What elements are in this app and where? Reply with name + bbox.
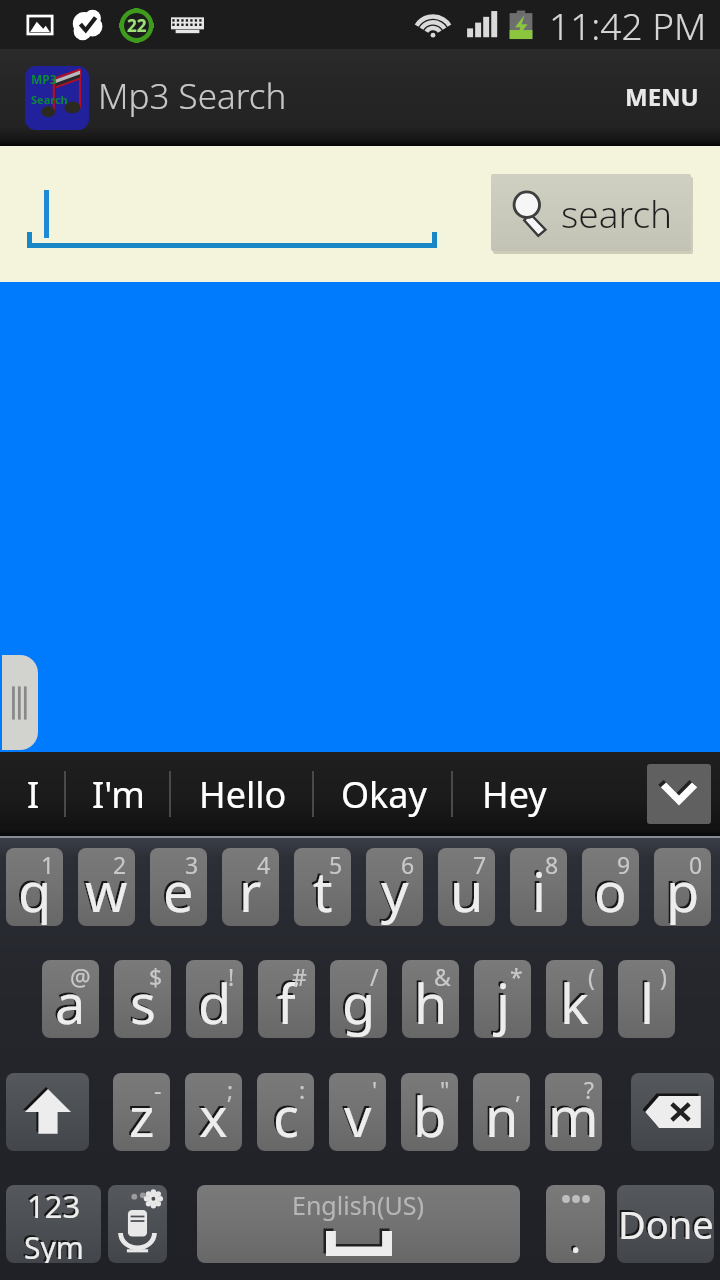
staticText: g <box>340 964 374 1038</box>
staticText: a <box>53 964 84 1038</box>
staticText: x <box>199 1079 228 1151</box>
staticText: f <box>275 964 294 1038</box>
staticText: # <box>292 961 307 992</box>
button[interactable]: k <box>546 960 603 1038</box>
button[interactable]: a <box>42 960 99 1038</box>
button[interactable]: c <box>257 1073 314 1151</box>
staticText: 8 <box>545 849 559 880</box>
button[interactable]: x <box>185 1073 242 1151</box>
staticText: 123 <box>25 1185 79 1225</box>
button[interactable]: Voice input <box>108 1185 167 1263</box>
button[interactable]: s <box>114 960 171 1038</box>
staticText: s <box>128 964 154 1038</box>
staticText: e <box>161 852 192 926</box>
button[interactable]: search <box>491 174 691 251</box>
staticText: Hey <box>482 770 547 819</box>
staticText: k <box>558 964 587 1038</box>
button[interactable]: e <box>150 848 207 926</box>
button[interactable]: MP3 <box>22 64 287 128</box>
staticText: , <box>515 1074 522 1105</box>
button[interactable]: j <box>474 960 531 1038</box>
button[interactable]: I <box>0 752 66 836</box>
staticText: Sym <box>24 1227 84 1263</box>
button[interactable]: w <box>78 848 135 926</box>
staticText: x <box>197 1077 226 1151</box>
button[interactable]: I'm <box>66 752 171 836</box>
button[interactable]: o <box>582 848 639 926</box>
button[interactable]: Drag handle <box>2 655 38 750</box>
staticText: v <box>342 1077 370 1151</box>
staticText: ; <box>227 1074 234 1105</box>
button[interactable]: Hello <box>171 752 314 836</box>
button[interactable]: . <box>546 1185 605 1263</box>
staticText: z <box>127 1077 153 1151</box>
button[interactable]: MENU <box>607 66 720 127</box>
button[interactable] <box>27 190 437 248</box>
button[interactable]: v <box>329 1073 386 1151</box>
staticText: c <box>271 1077 297 1151</box>
staticText: @ <box>70 961 91 992</box>
staticText: 22 <box>127 14 147 37</box>
button[interactable]: f <box>258 960 315 1038</box>
button[interactable]: Space <box>197 1185 520 1263</box>
button[interactable]: Shift <box>6 1073 89 1151</box>
staticText: 4 <box>257 849 271 880</box>
button[interactable]: l <box>618 960 675 1038</box>
staticText: . <box>568 1206 580 1263</box>
button[interactable]: 123 <box>6 1185 101 1263</box>
staticText: p <box>664 852 698 926</box>
button[interactable]: b <box>401 1073 458 1151</box>
button[interactable]: Hide keyboard <box>647 764 711 824</box>
staticText: " <box>440 1074 450 1105</box>
staticText: s <box>130 966 156 1038</box>
staticText: q <box>18 854 52 926</box>
staticText: 9 <box>617 849 631 880</box>
staticText: m <box>548 1079 599 1151</box>
staticText: k <box>560 966 589 1038</box>
staticText: 5 <box>329 849 343 880</box>
staticText: r <box>237 852 260 926</box>
staticText: v <box>344 1079 372 1151</box>
staticText: 123 <box>27 1185 81 1227</box>
staticText: English(US) <box>292 1188 425 1222</box>
staticText: d <box>196 964 230 1038</box>
staticText: d <box>198 966 232 1038</box>
staticText: 7 <box>473 849 487 880</box>
button[interactable]: p <box>654 848 711 926</box>
button[interactable]: q <box>6 848 63 926</box>
button[interactable]: n <box>473 1073 530 1151</box>
staticText: 2 <box>113 849 127 880</box>
staticText: 3 <box>185 849 199 880</box>
button[interactable]: Done <box>617 1185 714 1263</box>
staticText: Sym <box>22 1225 82 1261</box>
staticText: * <box>510 961 523 992</box>
button[interactable]: g <box>330 960 387 1038</box>
button[interactable]: i <box>510 848 567 926</box>
staticText: l <box>640 966 654 1038</box>
staticText: o <box>594 854 627 926</box>
button[interactable]: m <box>545 1073 602 1151</box>
staticText: : <box>299 1074 306 1105</box>
button[interactable]: u <box>438 848 495 926</box>
staticText: i <box>532 854 546 926</box>
staticText: t <box>313 854 333 926</box>
staticText: & <box>434 961 451 992</box>
staticText: w <box>85 854 128 926</box>
button[interactable]: r <box>222 848 279 926</box>
staticText: n <box>483 1077 517 1151</box>
button[interactable]: h <box>402 960 459 1038</box>
staticText: / <box>370 961 379 992</box>
staticText: w <box>83 852 126 926</box>
staticText: I <box>27 770 40 819</box>
button[interactable]: Okay <box>314 752 453 836</box>
button[interactable]: t <box>294 848 351 926</box>
button[interactable]: z <box>113 1073 170 1151</box>
button[interactable]: Backspace <box>631 1073 714 1151</box>
button[interactable]: d <box>186 960 243 1038</box>
button[interactable]: y <box>366 848 423 926</box>
staticText: ) <box>660 961 667 992</box>
staticText: c <box>273 1079 299 1151</box>
staticText: p <box>666 854 700 926</box>
button[interactable]: Hey <box>453 752 576 836</box>
staticText: o <box>592 852 625 926</box>
